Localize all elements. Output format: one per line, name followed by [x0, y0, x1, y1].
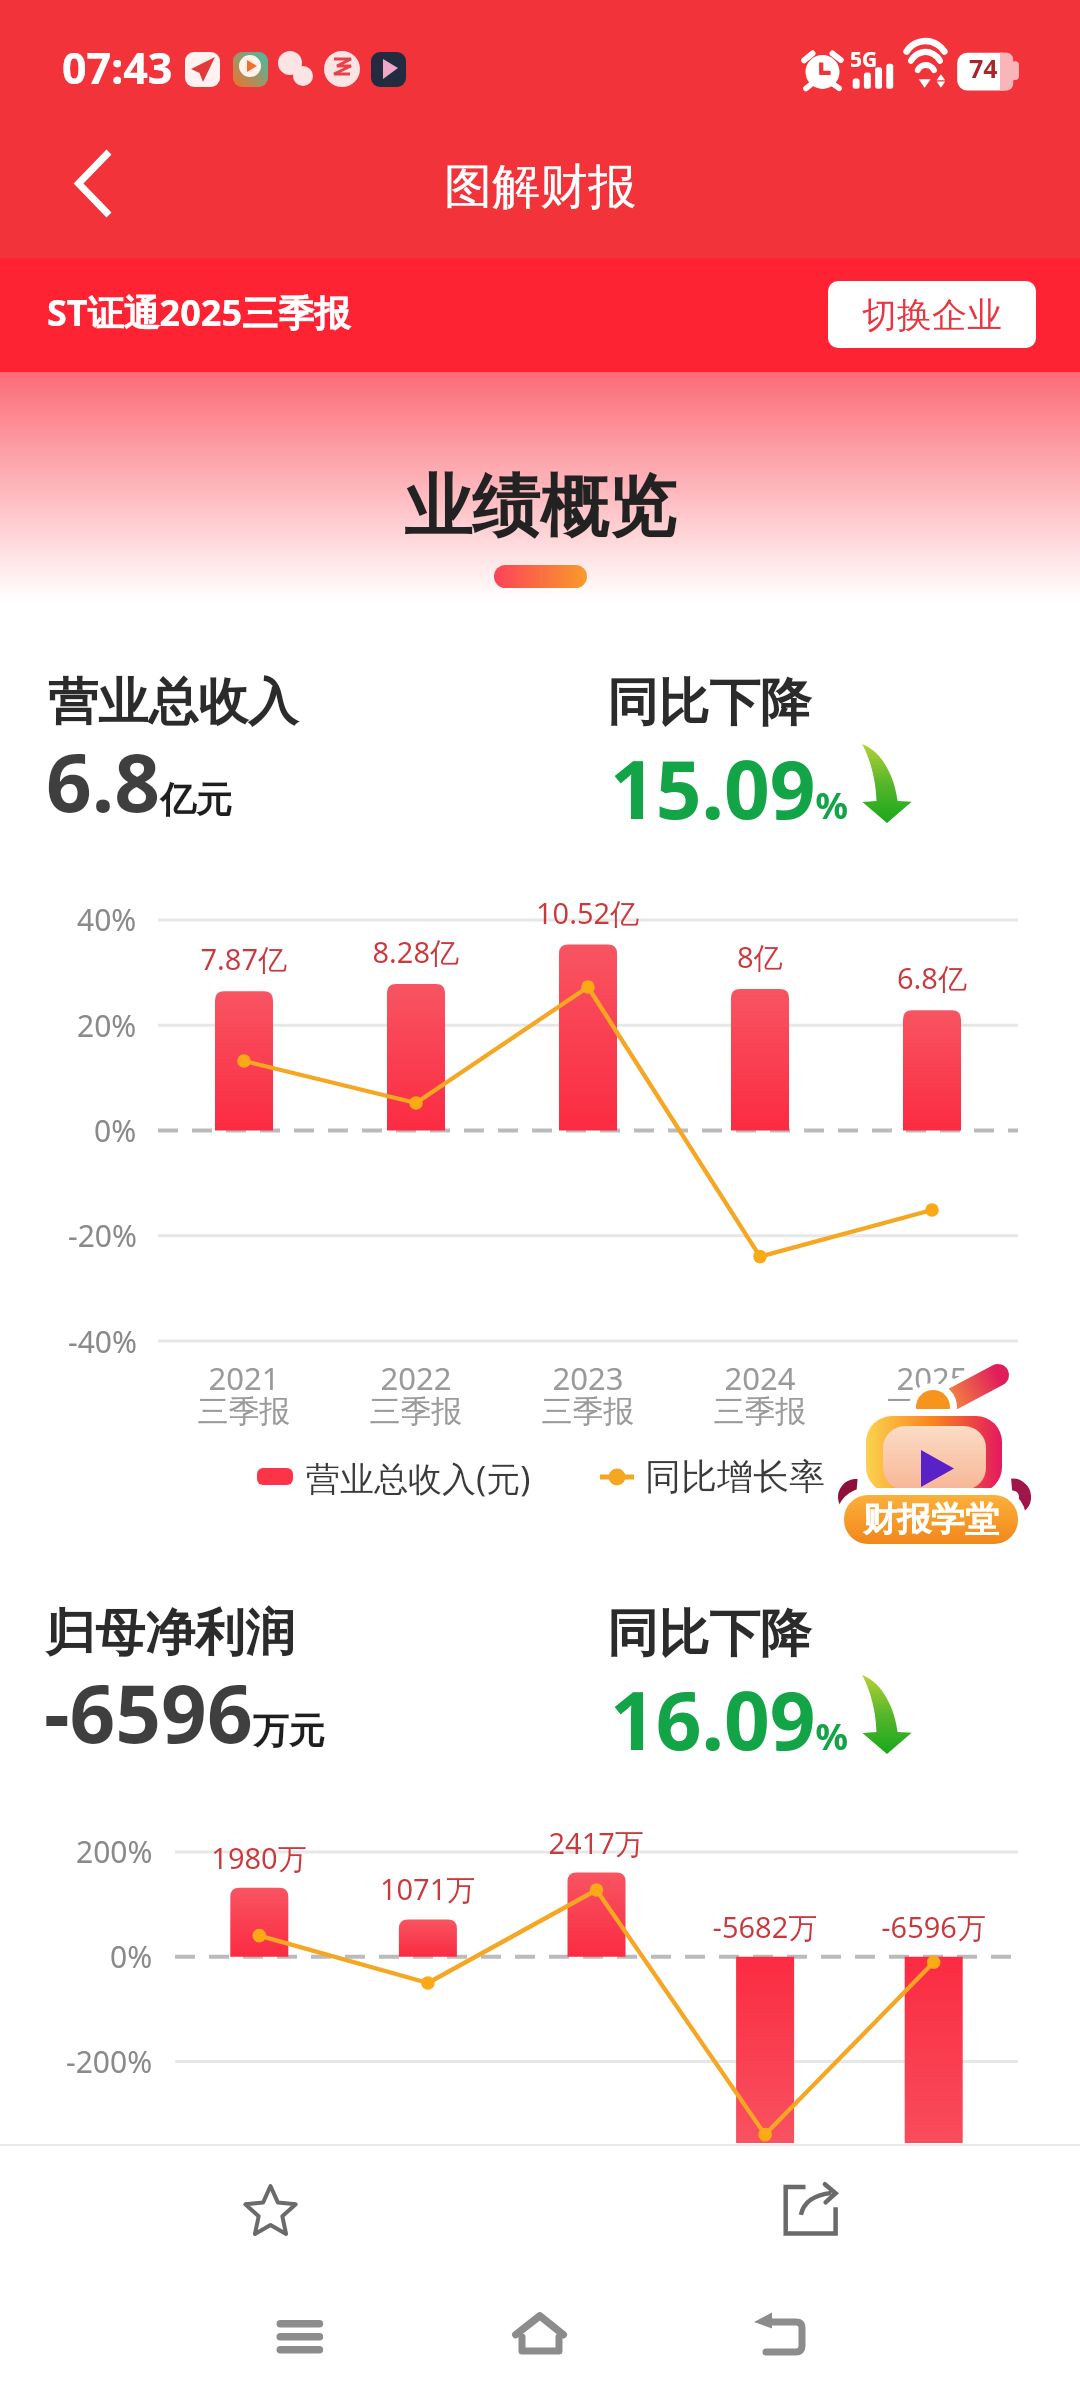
- staticText: 切换企业: [862, 293, 1002, 337]
- staticText: 15.09%: [610, 733, 848, 842]
- button[interactable]: Back: [720, 2276, 840, 2396]
- staticText: ST证通2025三季报: [47, 288, 350, 337]
- button[interactable]: Favorite: [212, 2150, 332, 2270]
- button[interactable]: 财报学堂: [836, 1364, 1032, 1552]
- button[interactable]: Recent apps: [240, 2276, 360, 2396]
- staticText: 同比下降: [607, 671, 811, 735]
- button[interactable]: Home: [480, 2276, 600, 2396]
- staticText: -6596万元: [44, 1657, 325, 1766]
- staticText: 16.09%: [610, 1664, 848, 1773]
- staticText: 同比增长率: [645, 1454, 825, 1499]
- staticText: 业绩概览: [0, 465, 1080, 551]
- button[interactable]: Share: [750, 2150, 870, 2270]
- staticText: 图解财报: [0, 157, 1080, 217]
- button[interactable]: Back: [48, 140, 148, 232]
- staticText: 07:43: [62, 38, 173, 97]
- button[interactable]: 切换企业: [828, 281, 1036, 348]
- staticText: 归母净利润: [45, 1602, 295, 1665]
- staticText: 6.8亿元: [46, 726, 232, 835]
- staticText: 营业总收入(元): [306, 1455, 531, 1501]
- staticText: 同比下降: [607, 1602, 811, 1666]
- staticText: 营业总收入: [48, 671, 298, 734]
